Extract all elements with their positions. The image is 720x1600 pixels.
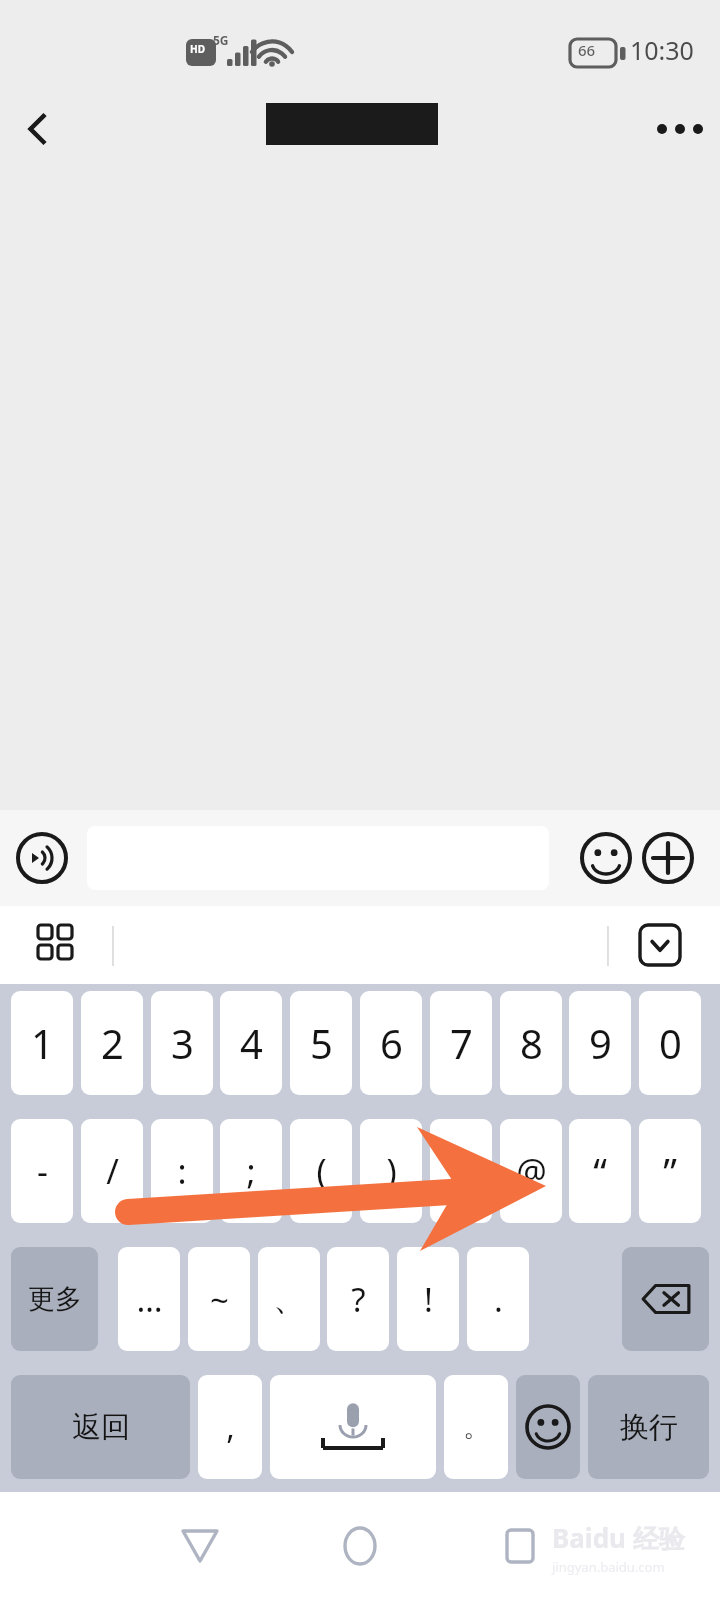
- staticText: 更多: [28, 1282, 82, 1316]
- button[interactable]: Emoji: [576, 828, 636, 888]
- staticText: 5: [310, 1016, 333, 1070]
- staticText: @: [516, 1148, 547, 1194]
- staticText: ): [386, 1148, 397, 1194]
- button[interactable]: ,: [198, 1375, 262, 1479]
- button[interactable]: Home: [310, 1496, 410, 1596]
- button[interactable]: More options: [650, 99, 710, 159]
- staticText: HD: [190, 42, 205, 56]
- button[interactable]: 7: [430, 991, 492, 1095]
- staticText: 、: [273, 1278, 306, 1320]
- button[interactable]: Keyboard panels: [22, 909, 94, 981]
- button[interactable]: ¥: [430, 1119, 492, 1223]
- staticText: ¥: [451, 1148, 471, 1194]
- staticText: 10:30: [630, 33, 694, 67]
- staticText: ”: [663, 1145, 677, 1197]
- button[interactable]: Back: [8, 99, 68, 159]
- button[interactable]: “: [569, 1119, 631, 1223]
- button[interactable]: More actions: [638, 828, 698, 888]
- button[interactable]: …: [118, 1247, 180, 1351]
- staticText: ;: [246, 1148, 256, 1194]
- staticText: …: [136, 1277, 163, 1322]
- button[interactable]: 4: [220, 991, 282, 1095]
- staticText: ,: [226, 1405, 235, 1449]
- button[interactable]: 更多: [11, 1247, 98, 1351]
- staticText: Baidu 经验: [552, 1520, 685, 1556]
- staticText: ?: [351, 1277, 366, 1322]
- button[interactable]: Back: [150, 1496, 250, 1596]
- button[interactable]: :: [151, 1119, 213, 1223]
- button[interactable]: ?: [327, 1247, 389, 1351]
- button[interactable]: 8: [500, 991, 562, 1095]
- staticText: 5G: [213, 32, 229, 48]
- staticText: 返回: [72, 1409, 130, 1446]
- staticText: /: [106, 1148, 119, 1194]
- staticText: ~: [210, 1277, 229, 1322]
- button[interactable]: Recent apps: [470, 1496, 570, 1596]
- button[interactable]: @: [500, 1119, 562, 1223]
- staticText: 7: [450, 1016, 473, 1070]
- button[interactable]: Hide keyboard: [626, 911, 694, 979]
- staticText: 8: [520, 1016, 543, 1070]
- staticText: jingyan.baidu.com: [552, 1558, 665, 1576]
- button[interactable]: /: [81, 1119, 143, 1223]
- button[interactable]: 换行: [588, 1375, 709, 1479]
- button[interactable]: 、: [258, 1247, 320, 1351]
- button[interactable]: ): [360, 1119, 422, 1223]
- staticText: 1: [31, 1016, 54, 1070]
- staticText: :: [177, 1148, 187, 1194]
- staticText: .: [494, 1277, 503, 1322]
- button[interactable]: (: [290, 1119, 352, 1223]
- button[interactable]: 3: [151, 991, 213, 1095]
- staticText: 3: [171, 1016, 194, 1070]
- button[interactable]: [516, 1375, 580, 1479]
- button[interactable]: 6: [360, 991, 422, 1095]
- button[interactable]: ~: [188, 1247, 250, 1351]
- button[interactable]: 9: [569, 991, 631, 1095]
- staticText: (: [316, 1148, 327, 1194]
- staticText: 。: [463, 1411, 489, 1444]
- staticText: 换行: [620, 1409, 678, 1446]
- staticText: 4: [240, 1016, 263, 1070]
- staticText: !: [424, 1277, 433, 1322]
- button[interactable]: 0: [639, 991, 701, 1095]
- button[interactable]: 2: [81, 991, 143, 1095]
- button[interactable]: !: [397, 1247, 459, 1351]
- staticText: 2: [101, 1016, 124, 1070]
- staticText: -: [37, 1148, 48, 1194]
- staticText: 6: [380, 1016, 403, 1070]
- button[interactable]: 5: [290, 991, 352, 1095]
- button[interactable]: ”: [639, 1119, 701, 1223]
- staticText: 66: [578, 40, 596, 60]
- button[interactable]: -: [11, 1119, 73, 1223]
- button[interactable]: [622, 1247, 709, 1351]
- button[interactable]: 返回: [11, 1375, 190, 1479]
- button[interactable]: .: [467, 1247, 529, 1351]
- button[interactable]: ;: [220, 1119, 282, 1223]
- button[interactable]: Voice input: [12, 828, 72, 888]
- staticText: 9: [589, 1016, 612, 1070]
- button[interactable]: 。: [444, 1375, 508, 1479]
- staticText: “: [593, 1145, 607, 1197]
- button[interactable]: [270, 1375, 436, 1479]
- staticText: 0: [659, 1016, 682, 1070]
- button[interactable]: 1: [11, 991, 73, 1095]
